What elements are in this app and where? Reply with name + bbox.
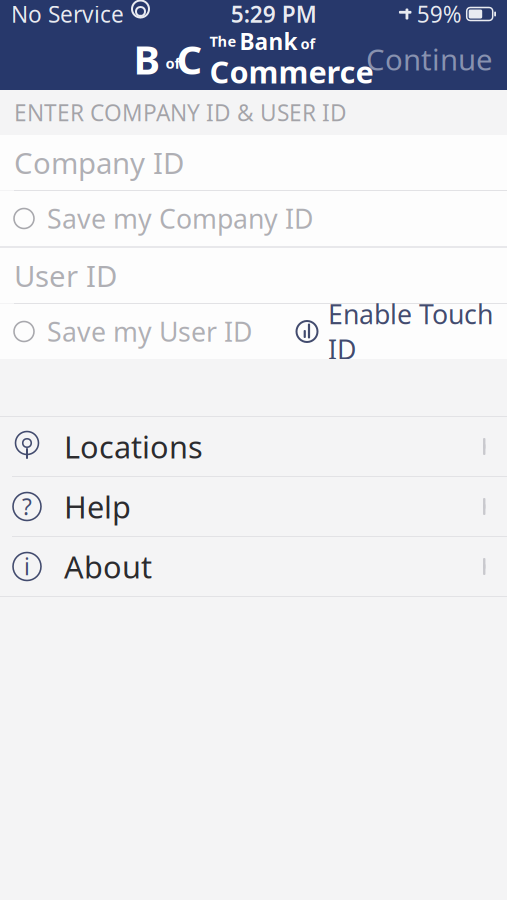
staticText: Save my Company ID [47, 201, 313, 236]
button[interactable]: ? [0, 477, 507, 536]
staticText: i [24, 551, 30, 581]
staticText: The [209, 31, 236, 51]
staticText: Enable Touch ID [328, 296, 493, 367]
button[interactable]: Continue [352, 25, 507, 92]
staticText: ENTER COMPANY ID & USER ID [14, 97, 347, 127]
staticText: B [133, 32, 160, 85]
staticText: C [176, 32, 202, 85]
staticText: Bank [239, 26, 297, 56]
staticText: Continue [366, 39, 493, 78]
button[interactable]: Save my User ID [0, 298, 266, 365]
staticText: of [300, 34, 315, 53]
staticText: Locations [64, 426, 203, 467]
button[interactable]: Locations [0, 417, 507, 476]
staticText: ? [22, 491, 32, 521]
staticText: of [165, 53, 180, 73]
staticText: Help [64, 486, 131, 527]
staticText: Commerce [209, 51, 373, 92]
staticText: 5:29 PM [231, 0, 317, 29]
staticText: Save my User ID [47, 314, 252, 349]
staticText: No Service [11, 0, 124, 29]
button[interactable]: i [0, 537, 507, 596]
button[interactable]: Enable Touch ID [281, 280, 507, 383]
staticText: Company ID [14, 143, 184, 182]
staticText: User ID [14, 256, 117, 295]
staticText: 59% [417, 0, 462, 29]
staticText: About [64, 546, 152, 587]
button[interactable]: Save my Company ID [0, 185, 327, 252]
